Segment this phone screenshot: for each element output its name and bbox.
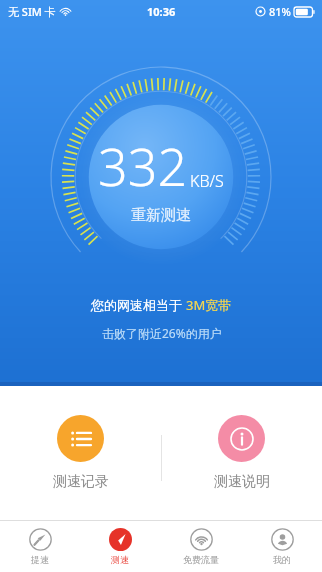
staticText: 免费流量	[183, 554, 219, 565]
staticText: 10:36	[147, 4, 176, 19]
button[interactable]: 我的	[241, 520, 322, 572]
staticText: 我的	[273, 554, 291, 565]
staticText: 81%	[269, 4, 291, 19]
staticText: 提速	[31, 554, 49, 565]
button[interactable]: 332	[86, 124, 236, 231]
staticText: KB/S	[190, 170, 224, 192]
button[interactable]: 测速说明	[161, 386, 322, 520]
staticText: 击败了附近26%的用户	[102, 325, 222, 341]
staticText: 重新测速	[131, 206, 191, 225]
staticText: 332	[98, 130, 188, 201]
staticText: 测速说明	[214, 473, 270, 491]
button[interactable]: 测速记录	[0, 386, 161, 520]
button[interactable]: 免费流量	[160, 520, 241, 572]
button[interactable]: 提速	[0, 520, 80, 572]
staticText: 无 SIM 卡	[8, 4, 56, 19]
staticText: 3M宽带	[186, 296, 232, 314]
staticText: 测速记录	[53, 473, 109, 491]
staticText: 测速	[111, 554, 129, 565]
button[interactable]: 测速	[80, 520, 160, 572]
staticText: 您的网速相当于	[91, 296, 186, 314]
